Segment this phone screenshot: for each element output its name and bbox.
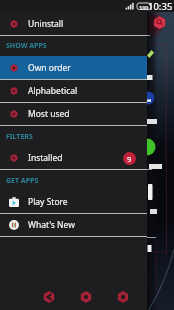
staticText: 10:35 — [148, 0, 173, 12]
button[interactable]: What's New — [0, 214, 147, 236]
button[interactable]: Back — [24, 283, 49, 308]
staticText: GET APPS — [6, 176, 39, 186]
staticText: FILTERS — [6, 132, 33, 142]
staticText: What's New — [28, 219, 75, 231]
button[interactable]: Own order — [0, 56, 147, 79]
button[interactable]: Play Store — [0, 191, 147, 213]
button[interactable]: Installed — [0, 147, 147, 169]
button[interactable]: Alphabetical — [0, 80, 147, 102]
staticText: Uninstall — [28, 18, 64, 30]
staticText: 9 — [127, 154, 132, 164]
staticText: SHOW APPS — [6, 41, 47, 51]
staticText: Play Store — [28, 196, 68, 208]
staticText: Alphabetical — [28, 85, 78, 97]
staticText: Own order — [28, 62, 71, 74]
button[interactable]: Recents — [98, 283, 123, 308]
button[interactable]: Uninstall — [0, 12, 147, 35]
staticText: Installed — [28, 152, 63, 164]
staticText: 100 — [139, 4, 149, 11]
staticText: Most used — [28, 108, 70, 120]
button[interactable]: Home — [61, 283, 86, 308]
button[interactable]: Most used — [0, 103, 147, 125]
